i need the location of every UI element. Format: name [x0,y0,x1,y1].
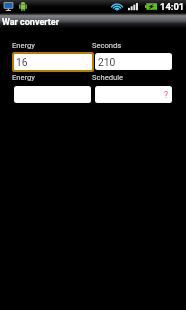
staticText: Schedule [92,73,124,82]
staticText: Seconds [92,41,122,50]
staticText: 16 [16,56,28,68]
other: Wi-Fi [110,1,124,12]
staticText: Energy [12,41,35,50]
staticText: War converter [2,17,59,28]
other: Android notification [19,1,27,12]
button[interactable]: 210 [96,54,171,69]
button[interactable]: ? [96,87,171,102]
staticText: ? [164,90,169,100]
staticText: Energy [12,73,35,82]
staticText: 210 [98,56,116,68]
button[interactable]: 16 [14,54,92,70]
staticText: 14:01 [160,1,185,12]
other: USB connected [3,1,14,12]
other: Battery charging [145,1,157,12]
other: Mobile signal [128,1,138,12]
